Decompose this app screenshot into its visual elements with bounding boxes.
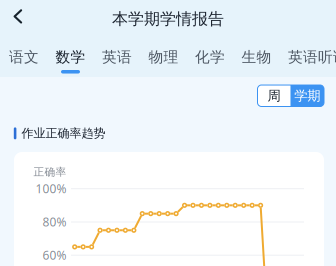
button[interactable]: 物理	[148, 48, 178, 73]
button[interactable]: 数学	[55, 48, 85, 73]
staticText: 物理	[148, 48, 178, 66]
button[interactable]: 化学	[195, 48, 225, 73]
staticText: 英语听读	[288, 48, 336, 66]
staticText: 学期	[294, 88, 320, 104]
staticText: 正确率	[33, 165, 66, 179]
staticText: 100%	[35, 181, 66, 197]
staticText: 数学	[55, 48, 85, 66]
button[interactable]: 学期	[290, 85, 324, 106]
staticText: 生物	[241, 48, 271, 66]
staticText: 作业正确率趋势	[21, 126, 105, 141]
button[interactable]: 英语听读	[288, 48, 336, 73]
staticText: 语文	[9, 48, 39, 66]
button[interactable]: 生物	[241, 48, 271, 73]
button[interactable]: 语文	[9, 48, 39, 73]
button[interactable]: 周	[257, 85, 290, 106]
button[interactable]: 返回	[0, 0, 36, 33]
staticText: 本学期学情报告	[112, 9, 224, 29]
button[interactable]: 英语	[102, 48, 132, 73]
staticText: 周	[267, 88, 280, 104]
staticText: 英语	[102, 48, 132, 66]
staticText: 60%	[42, 247, 66, 263]
staticText: 化学	[195, 48, 225, 66]
staticText: 80%	[42, 214, 66, 230]
